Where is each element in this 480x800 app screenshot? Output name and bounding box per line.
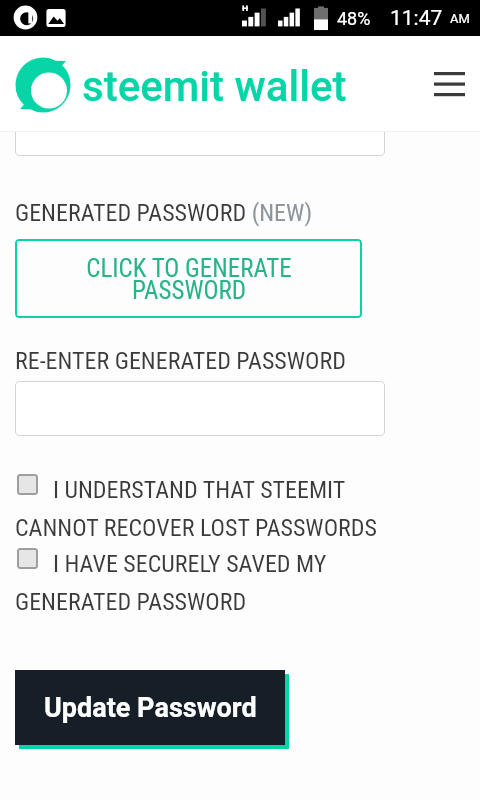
button[interactable] (15, 101, 385, 156)
staticText: Update Password (44, 692, 257, 724)
staticText: CLICK TO GENERATE PASSWORD (75, 254, 303, 305)
staticText: steemit wallet (82, 62, 347, 111)
staticText: I UNDERSTAND THAT STEEMIT (53, 476, 346, 504)
staticText: CANNOT RECOVER LOST PASSWORDS (15, 514, 377, 542)
staticText: GENERATED PASSWORD (15, 588, 247, 616)
staticText: RE-ENTER GENERATED PASSWORD (15, 347, 346, 375)
staticText: 48% (337, 8, 371, 29)
button[interactable]: Open menu (422, 48, 468, 96)
button[interactable]: I HAVE SECURELY SAVED MY (0, 540, 480, 615)
button[interactable]: I UNDERSTAND THAT STEEMIT (0, 466, 480, 541)
staticText: GENERATED PASSWORD (NEW) (15, 199, 313, 227)
staticText: AM (450, 11, 470, 26)
button[interactable]: Update Password (15, 670, 285, 745)
button[interactable] (15, 381, 385, 436)
staticText: I HAVE SECURELY SAVED MY (53, 550, 327, 578)
staticText: 11:47 (390, 6, 443, 31)
button[interactable]: CLICK TO GENERATE PASSWORD (15, 239, 362, 318)
